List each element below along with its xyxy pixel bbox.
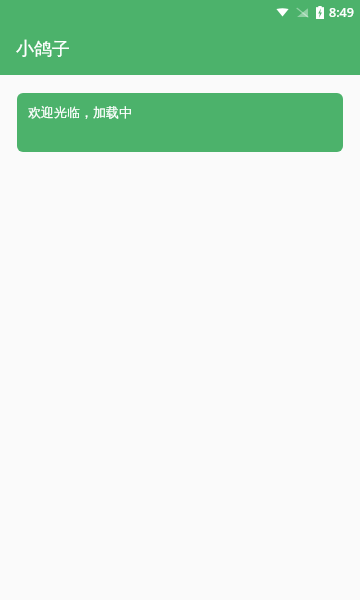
other: Battery charging bbox=[316, 6, 324, 19]
staticText: 8:49 bbox=[329, 4, 354, 21]
other: Wi-Fi connected bbox=[276, 6, 289, 19]
button[interactable]: 欢迎光临，加载中 bbox=[17, 93, 343, 152]
staticText: 欢迎光临，加载中 bbox=[28, 104, 132, 120]
other: No SIM card bbox=[296, 6, 309, 19]
staticText: 小鸽子 bbox=[16, 38, 70, 61]
